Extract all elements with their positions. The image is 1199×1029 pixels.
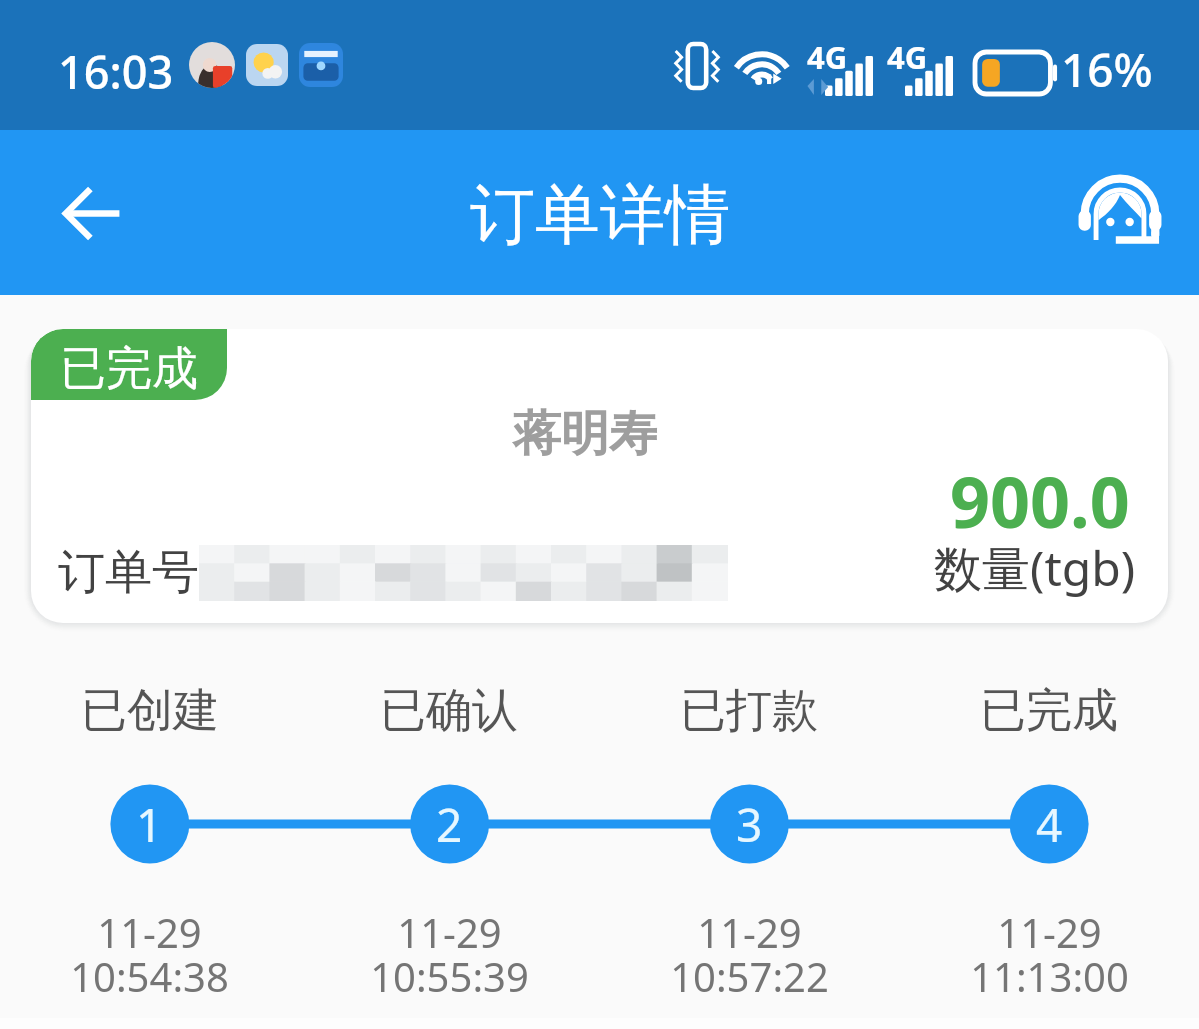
staticText: 11-29 10:55:39	[370, 905, 529, 1004]
staticText: 已完成	[60, 340, 198, 398]
staticText: 11-29 10:54:38	[70, 905, 229, 1004]
staticText: 数量(tgb)	[934, 535, 1136, 601]
staticText: 3	[736, 793, 763, 856]
staticText: 4	[1036, 793, 1063, 856]
staticText: 已确认	[380, 682, 518, 740]
staticText: 蒋明寿	[513, 404, 657, 464]
staticText: 1	[136, 793, 163, 856]
button[interactable]: Customer service	[1061, 154, 1179, 272]
staticText: 已完成	[980, 682, 1118, 740]
staticText: 4G	[887, 36, 928, 78]
button[interactable]: Back	[32, 154, 150, 272]
button[interactable]: 4	[899, 782, 1199, 866]
staticText: 已创建	[81, 682, 219, 740]
staticText: 已打款	[680, 682, 818, 740]
staticText: 16:03	[58, 41, 174, 102]
button[interactable]: 3	[599, 782, 899, 866]
staticText: 4G	[807, 36, 848, 78]
staticText: 900.0	[950, 453, 1130, 548]
button[interactable]: 1	[0, 782, 299, 866]
button[interactable]: 2	[299, 782, 599, 866]
staticText: 订单详情	[470, 174, 730, 256]
staticText: 11-29 11:13:00	[970, 905, 1129, 1004]
button[interactable]: 已完成	[31, 329, 1168, 623]
staticText: 16%	[1061, 38, 1153, 101]
staticText: 2	[436, 793, 463, 856]
staticText: 11-29 10:57:22	[670, 905, 829, 1004]
staticText: 订单号	[58, 543, 199, 602]
